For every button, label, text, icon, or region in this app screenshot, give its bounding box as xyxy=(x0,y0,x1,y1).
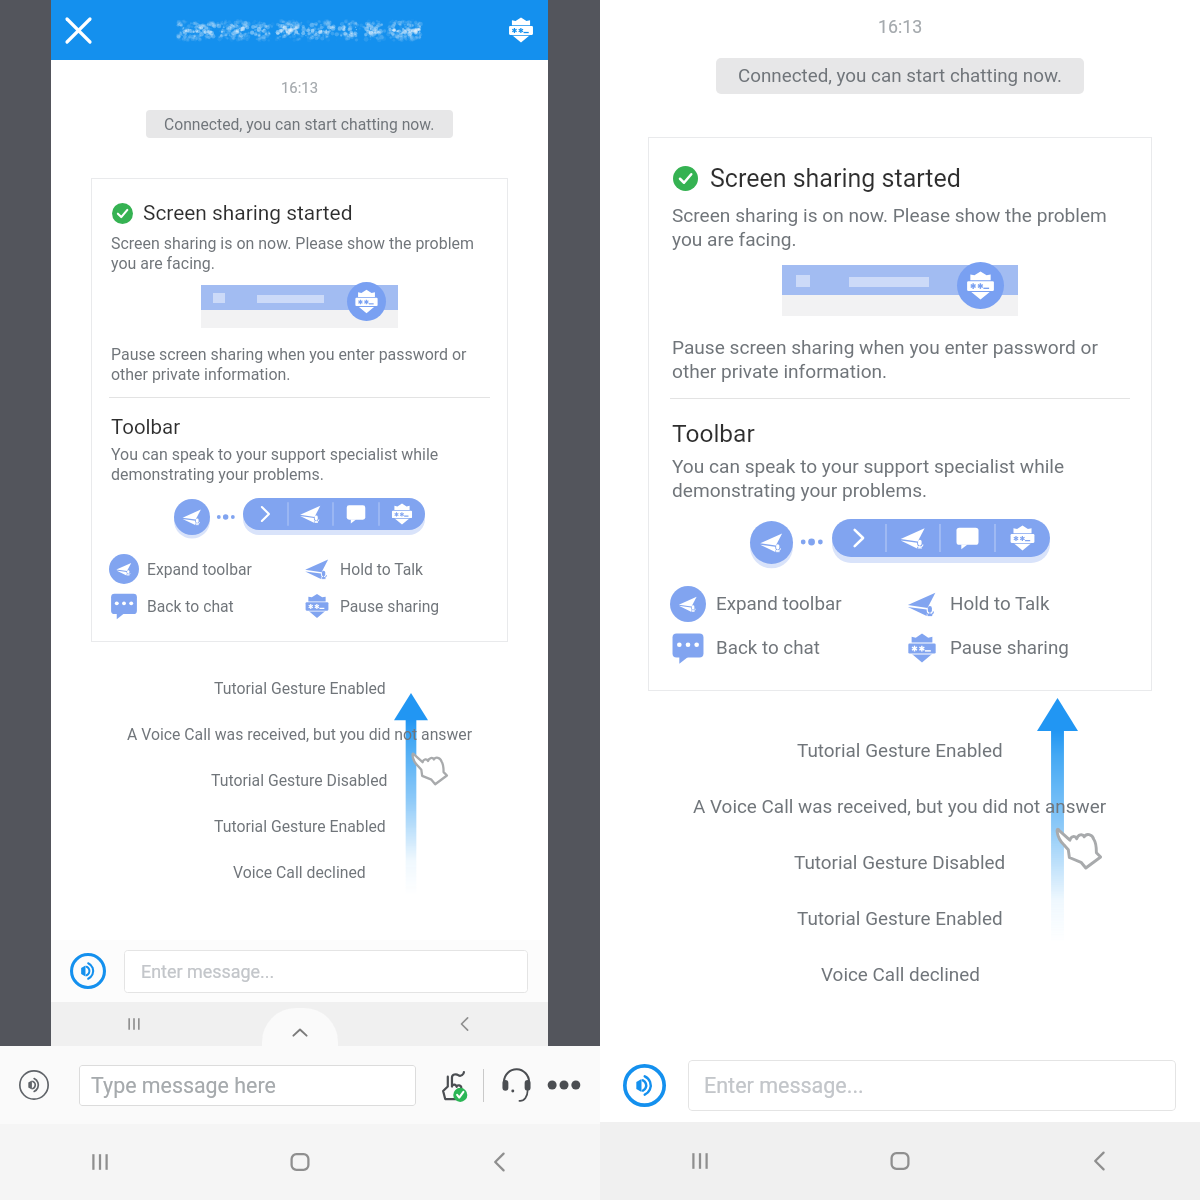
staticText: You can speak to your support specialist… xyxy=(111,445,488,484)
staticText: Pause sharing xyxy=(950,637,1069,659)
button[interactable]: Connected, you can start chatting now. xyxy=(716,58,1084,94)
button[interactable]: Back to chat xyxy=(670,630,820,666)
button[interactable]: Connected, you can start chatting now. xyxy=(146,110,453,138)
button[interactable]: Type message here xyxy=(79,1065,416,1106)
button[interactable]: More options xyxy=(544,1065,584,1105)
staticText: Pause screen sharing when you enter pass… xyxy=(672,336,1128,383)
button[interactable]: Home xyxy=(216,1002,382,1046)
staticText: Tutorial Gesture Enabled xyxy=(214,679,386,697)
button[interactable]: Enter message... xyxy=(124,950,528,993)
staticText: Tutorial Gesture Disabled xyxy=(794,851,1006,873)
button[interactable]: Voice xyxy=(623,1064,666,1107)
staticText: Pause sharing xyxy=(340,597,440,615)
staticText: Tutorial Gesture Enabled xyxy=(797,739,1003,761)
button[interactable]: Recents xyxy=(51,1002,216,1046)
button[interactable]: Pause sharing xyxy=(904,630,1069,666)
staticText: Voice Call declined xyxy=(821,963,980,985)
button[interactable]: Enter message... xyxy=(688,1060,1176,1111)
staticText: 16:13 xyxy=(878,16,923,37)
staticText: A Voice Call was received, but you did n… xyxy=(693,795,1107,817)
button[interactable]: Pause sharing xyxy=(302,591,440,621)
staticText: Tutorial Gesture Enabled xyxy=(797,907,1003,929)
staticText: Connected, you can start chatting now. xyxy=(164,115,435,133)
staticText: Tutorial Gesture Disabled xyxy=(211,771,388,789)
staticText: Toolbar xyxy=(111,415,181,439)
staticText: Enter message... xyxy=(704,1073,864,1098)
staticText: Back to chat xyxy=(147,597,234,615)
staticText: Screen sharing is on now. Please show th… xyxy=(672,204,1128,251)
button[interactable]: Back xyxy=(400,1124,600,1200)
staticText: Pause screen sharing when you enter pass… xyxy=(111,345,488,384)
staticText: A Voice Call was received, but you did n… xyxy=(127,725,473,743)
button[interactable]: Recents xyxy=(600,1122,800,1200)
staticText: Voice Call declined xyxy=(233,863,366,881)
button[interactable]: Home xyxy=(200,1124,400,1200)
staticText: You can speak to your support specialist… xyxy=(672,455,1128,502)
button[interactable]: Recents xyxy=(0,1124,200,1200)
staticText: Connected, you can start chatting now. xyxy=(738,65,1062,87)
button[interactable]: Voice message xyxy=(19,1070,49,1100)
button[interactable]: Voice xyxy=(70,953,106,989)
button[interactable]: Agent xyxy=(494,3,548,57)
button[interactable]: Back xyxy=(382,1002,548,1046)
button[interactable]: Close xyxy=(51,3,105,57)
staticText: Enter message... xyxy=(141,961,275,982)
staticText: Type message here xyxy=(91,1073,276,1098)
button[interactable]: Expand toolbar xyxy=(109,554,252,584)
staticText: Screen sharing started xyxy=(143,201,353,225)
staticText: Hold to Talk xyxy=(950,593,1050,615)
staticText: 16:13 xyxy=(281,79,319,96)
button[interactable]: Expand toolbar xyxy=(670,586,842,622)
button[interactable]: Contact support xyxy=(496,1065,536,1105)
button[interactable]: Back xyxy=(1000,1122,1200,1200)
staticText: Back to chat xyxy=(716,637,820,659)
button[interactable]: Home xyxy=(800,1122,1000,1200)
button[interactable]: Hold to Talk xyxy=(904,586,1050,622)
staticText: Expand toolbar xyxy=(147,560,252,578)
button[interactable]: Back to chat xyxy=(109,591,234,621)
button[interactable]: Hold to Talk xyxy=(302,554,423,584)
staticText: Tutorial Gesture Enabled xyxy=(214,817,386,835)
staticText: Toolbar xyxy=(672,419,755,448)
staticText: Screen sharing is on now. Please show th… xyxy=(111,234,488,273)
button[interactable]: Gesture enabled xyxy=(434,1066,472,1104)
staticText: Expand toolbar xyxy=(716,593,842,615)
staticText: Hold to Talk xyxy=(340,560,423,578)
button[interactable]: Expand toolbar xyxy=(262,1008,338,1046)
staticText: Screen sharing started xyxy=(710,164,961,193)
